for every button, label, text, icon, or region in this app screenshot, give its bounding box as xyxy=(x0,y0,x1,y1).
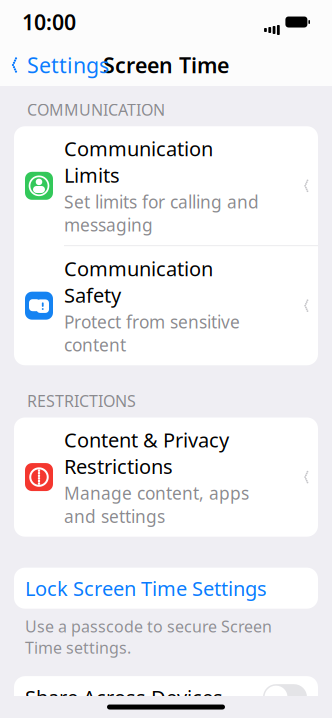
button[interactable]: Share Across Devices xyxy=(14,676,318,718)
button[interactable]: Lock Screen Time Settings xyxy=(14,568,318,609)
button[interactable]: Communication Limits xyxy=(14,126,318,245)
staticText: Lock Screen Time Settings xyxy=(25,575,267,601)
staticText: Set limits for calling and messaging xyxy=(64,190,259,236)
button[interactable]: Content & Privacy Restrictions xyxy=(14,417,318,537)
staticText: RESTRICTIONS xyxy=(27,390,136,411)
staticText: Communication Limits xyxy=(64,135,213,188)
staticText: Screen Time xyxy=(103,51,229,79)
button[interactable]: Settings xyxy=(0,44,117,86)
staticText: Communication Safety xyxy=(64,255,213,308)
staticText: Use a passcode to secure Screen Time set… xyxy=(25,616,272,658)
staticText: 10:00 xyxy=(22,8,76,36)
staticText: Manage content, apps and settings xyxy=(64,482,249,528)
staticText: Content & Privacy Restrictions xyxy=(64,426,229,480)
staticText: COMMUNICATION xyxy=(27,99,165,120)
staticText: Settings xyxy=(27,51,109,79)
staticText: Share Across Devices xyxy=(25,684,223,710)
button[interactable]: Communication Safety xyxy=(14,246,318,365)
staticText: Protect from sensitive content xyxy=(64,310,240,356)
